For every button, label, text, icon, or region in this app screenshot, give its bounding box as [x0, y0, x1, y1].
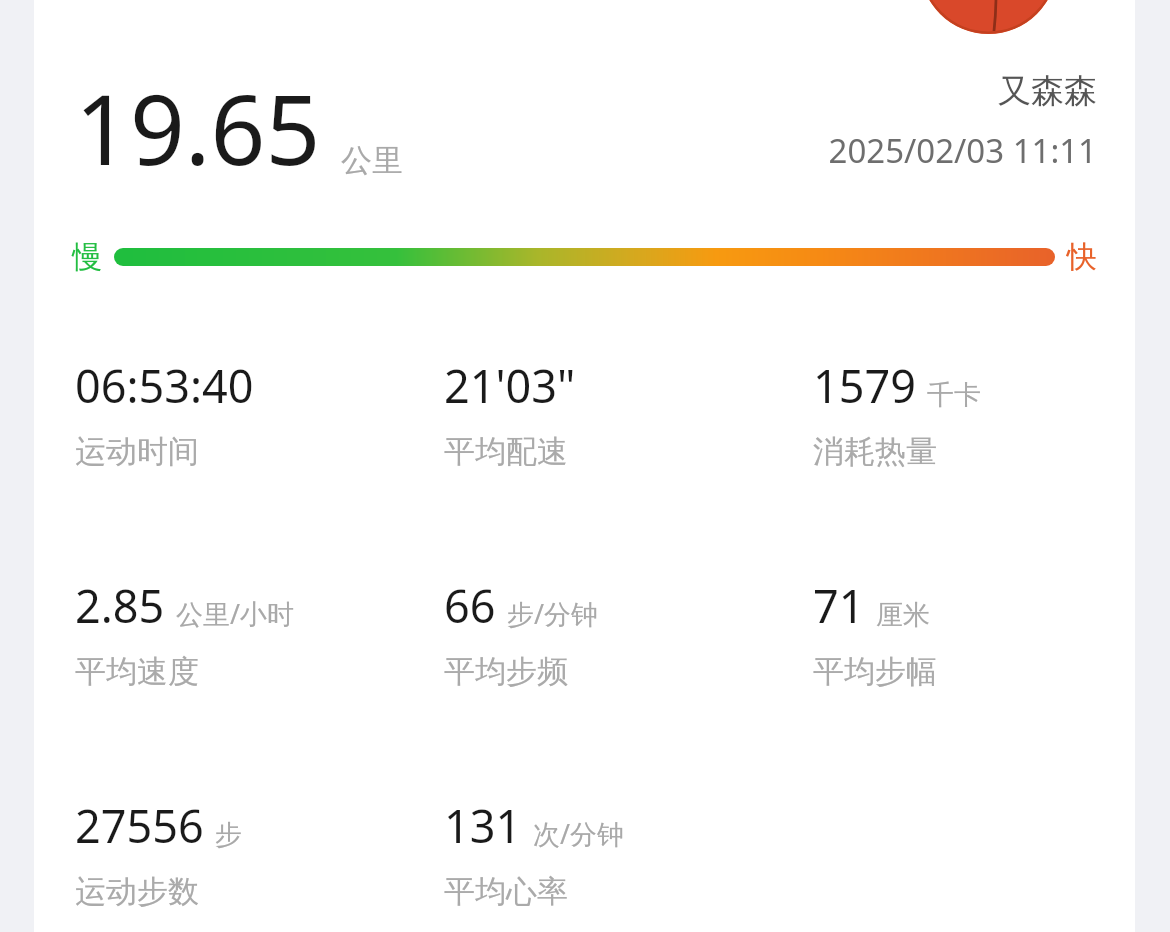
- button[interactable]: 27556: [75, 795, 444, 911]
- button[interactable]: 1579: [813, 355, 1115, 471]
- button[interactable]: 71: [813, 575, 1115, 691]
- staticText: 21'03": [444, 355, 576, 416]
- staticText: 消耗热量: [813, 432, 937, 471]
- staticText: 平均步幅: [813, 652, 937, 691]
- staticText: 厘米: [876, 598, 930, 632]
- staticText: 运动时间: [75, 432, 199, 471]
- staticText: 步: [215, 818, 242, 852]
- staticText: 2025/02/03 11:11: [828, 128, 1097, 173]
- staticText: 运动步数: [75, 872, 199, 911]
- staticText: 1579: [813, 355, 916, 416]
- staticText: 千卡: [927, 378, 981, 412]
- staticText: 公里/小时: [176, 595, 295, 632]
- staticText: 06:53:40: [75, 355, 254, 416]
- staticText: 71: [813, 575, 865, 636]
- staticText: 慢: [72, 238, 102, 276]
- staticText: 平均心率: [444, 872, 568, 911]
- staticText: 66: [444, 575, 496, 636]
- button[interactable]: 131: [444, 795, 813, 911]
- staticText: 次/分钟: [533, 815, 625, 852]
- staticText: 公里: [341, 141, 403, 180]
- staticText: 平均步频: [444, 652, 568, 691]
- button[interactable]: 2.85: [75, 575, 444, 691]
- button[interactable]: 21'03": [444, 355, 813, 471]
- staticText: 平均速度: [75, 652, 199, 691]
- staticText: 19.65: [75, 62, 321, 193]
- staticText: 快: [1067, 238, 1097, 276]
- staticText: 步/分钟: [507, 595, 599, 632]
- staticText: 平均配速: [444, 432, 568, 471]
- button[interactable]: 06:53:40: [75, 355, 444, 471]
- staticText: 又森森: [998, 70, 1097, 112]
- button[interactable]: 66: [444, 575, 813, 691]
- staticText: 131: [444, 795, 522, 856]
- staticText: 2.85: [75, 575, 165, 636]
- staticText: 27556: [75, 795, 204, 856]
- button[interactable]: User avatar: [920, 0, 1057, 34]
